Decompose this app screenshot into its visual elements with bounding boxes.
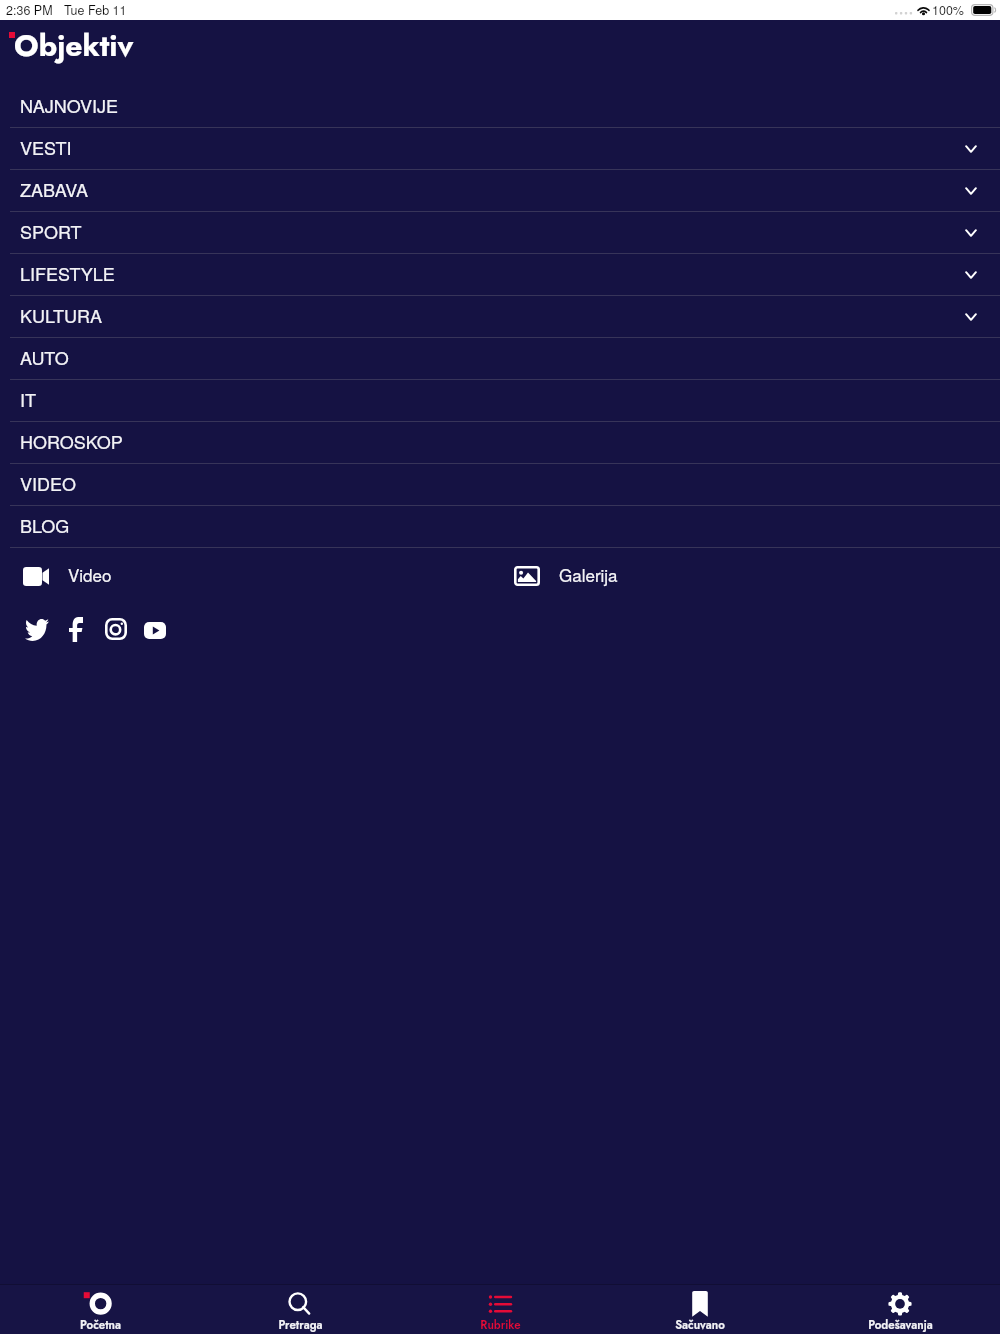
staticText: AUTO <box>20 344 69 370</box>
button[interactable]: LIFESTYLE <box>0 254 1000 296</box>
staticText: NAJNOVIJE <box>20 92 119 118</box>
staticText: Galerija <box>559 562 618 586</box>
button[interactable]: YouTube <box>144 616 166 644</box>
button[interactable]: Početna <box>0 1285 200 1334</box>
button[interactable]: NAJNOVIJE <box>0 86 1000 128</box>
staticText: 2:36 PM <box>6 1 53 19</box>
staticText: IT <box>20 386 37 412</box>
staticText: VESTI <box>20 134 72 160</box>
button[interactable]: Twitter <box>25 616 49 644</box>
staticText: Video <box>68 562 112 586</box>
staticText: Objektiv <box>14 24 134 67</box>
staticText: KULTURA <box>20 302 103 328</box>
staticText: HOROSKOP <box>20 428 123 454</box>
button[interactable]: Video <box>0 560 500 592</box>
staticText: LIFESTYLE <box>20 260 115 286</box>
button[interactable]: BLOG <box>0 506 1000 548</box>
button[interactable]: KULTURA <box>0 296 1000 338</box>
staticText: Tue Feb 11 <box>64 1 127 19</box>
staticText: Sačuvano <box>675 1317 725 1333</box>
button[interactable]: Facebook <box>69 616 83 644</box>
button[interactable]: VESTI <box>0 128 1000 170</box>
button[interactable]: Rubrike <box>400 1285 600 1334</box>
button[interactable]: Instagram <box>105 616 127 644</box>
button[interactable]: AUTO <box>0 338 1000 380</box>
staticText: 100% <box>932 1 964 19</box>
staticText: VIDEO <box>20 470 77 496</box>
button[interactable]: VIDEO <box>0 464 1000 506</box>
button[interactable]: HOROSKOP <box>0 422 1000 464</box>
staticText: Rubrike <box>480 1317 521 1333</box>
staticText: Podešavanja <box>868 1317 933 1333</box>
button[interactable]: IT <box>0 380 1000 422</box>
button[interactable]: Galerija <box>500 560 1000 592</box>
staticText: ZABAVA <box>20 176 89 202</box>
staticText: Pretraga <box>278 1317 323 1333</box>
button[interactable]: ZABAVA <box>0 170 1000 212</box>
button[interactable]: Podešavanja <box>800 1285 1000 1334</box>
button[interactable]: Sačuvano <box>600 1285 800 1334</box>
staticText: Početna <box>80 1317 121 1333</box>
button[interactable]: SPORT <box>0 212 1000 254</box>
staticText: BLOG <box>20 512 70 538</box>
button[interactable]: Pretraga <box>200 1285 400 1334</box>
staticText: SPORT <box>20 218 82 244</box>
